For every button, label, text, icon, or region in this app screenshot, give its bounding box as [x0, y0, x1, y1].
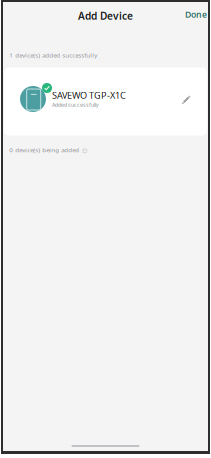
button[interactable]: SAVEWO TGP-X1C — [4, 67, 207, 135]
staticText: SAVEWO TGP-X1C — [52, 89, 126, 101]
staticText: Added successfully — [52, 101, 99, 108]
staticText: 1 device(s) added successfully — [9, 51, 97, 59]
staticText: Add Device — [78, 9, 133, 23]
button[interactable]: Add Device — [74, 6, 137, 26]
staticText: Done — [185, 8, 207, 20]
button[interactable]: Done — [179, 4, 208, 24]
staticText: 0 device(s) being added — [9, 146, 79, 154]
